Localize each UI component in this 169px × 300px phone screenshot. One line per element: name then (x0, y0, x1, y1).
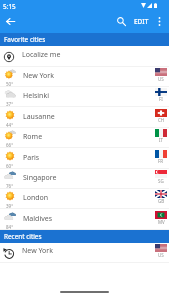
staticText: Rome (23, 132, 43, 142)
staticText: US (158, 76, 164, 82)
button[interactable]: More options (150, 11, 169, 32)
button[interactable]: 44° (0, 108, 169, 128)
staticText: New York (22, 246, 53, 256)
staticText: MV (158, 219, 165, 225)
button[interactable]: New York (0, 243, 169, 263)
staticText: Singapore (23, 173, 57, 183)
staticText: FR (158, 158, 164, 164)
staticText: SG (158, 178, 164, 184)
staticText: 84° (6, 224, 14, 230)
button[interactable]: 60° (0, 149, 169, 169)
staticText: 44° (6, 122, 14, 128)
staticText: CH (158, 117, 165, 123)
staticText: Maldives (23, 214, 53, 224)
staticText: 66° (6, 142, 14, 148)
staticText: 37° (6, 101, 14, 107)
staticText: Localize me (22, 50, 61, 60)
staticText: Lausanne (23, 112, 55, 122)
staticText: Helsinki (23, 91, 49, 101)
staticText: IT (159, 137, 164, 143)
staticText: GB (158, 198, 165, 204)
staticText: Favorite cities (4, 35, 46, 44)
button[interactable]: 50° (0, 67, 169, 87)
button[interactable]: 66° (0, 128, 169, 148)
button[interactable]: EDIT (132, 11, 150, 32)
staticText: 60° (6, 163, 14, 169)
staticText: EDIT (134, 17, 149, 26)
staticText: US (158, 252, 164, 258)
button[interactable]: Search (111, 11, 132, 32)
staticText: FI (159, 96, 163, 102)
button[interactable]: 84° (0, 210, 169, 230)
staticText: 50° (6, 81, 14, 87)
staticText: 76° (6, 183, 14, 189)
staticText: London (23, 193, 49, 203)
button[interactable]: 37° (0, 87, 169, 107)
staticText: New York (23, 71, 54, 81)
button[interactable]: Localize me (0, 47, 169, 67)
staticText: 39° (6, 203, 14, 209)
staticText: Recent cities (4, 232, 42, 241)
staticText: 5:15 (3, 2, 16, 11)
button[interactable]: 76° (0, 169, 169, 189)
staticText: Paris (23, 153, 40, 163)
button[interactable]: Back (0, 11, 21, 32)
button[interactable]: 39° (0, 189, 169, 209)
